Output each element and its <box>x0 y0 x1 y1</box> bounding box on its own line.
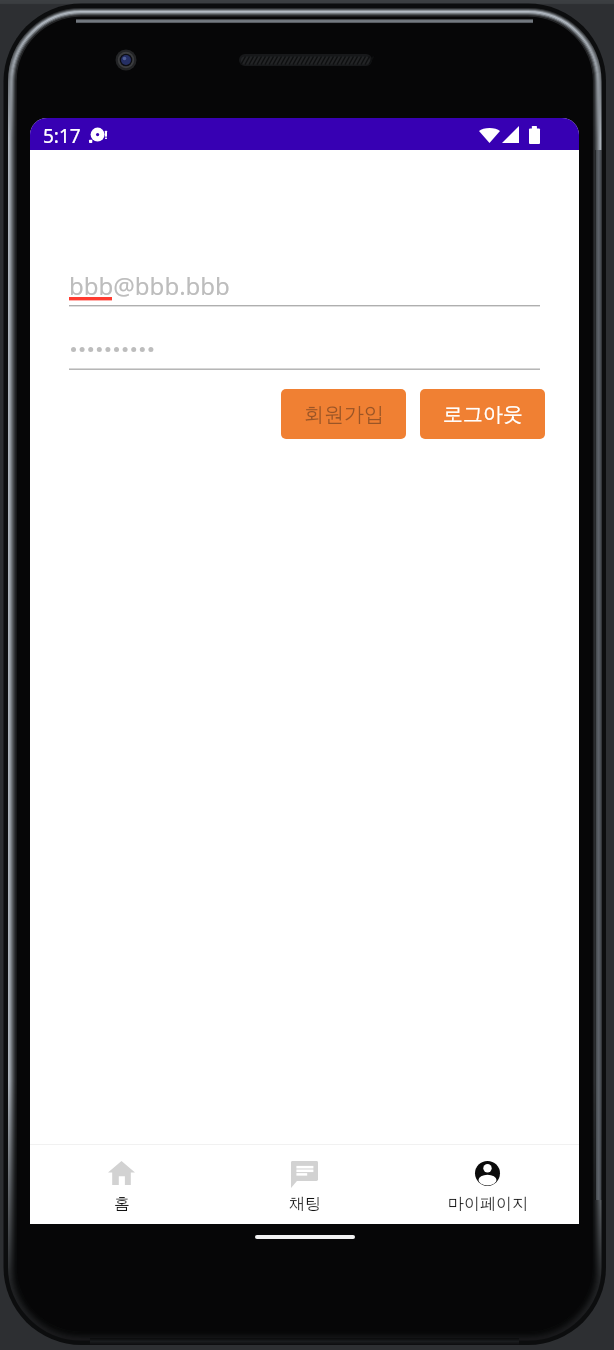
staticText: 5:17 <box>43 123 81 149</box>
staticText: 채팅 <box>289 1194 321 1214</box>
staticText: 홈 <box>114 1194 130 1214</box>
button[interactable]: 홈 <box>30 1145 213 1214</box>
staticText: 로그아웃 <box>443 402 523 427</box>
button[interactable]: 채팅 <box>213 1145 396 1214</box>
staticText: 회원가입 <box>304 402 384 427</box>
staticText: bbb@bbb.bbb <box>69 269 230 302</box>
staticText: 마이페이지 <box>448 1194 528 1214</box>
button[interactable]: 마이페이지 <box>396 1145 579 1214</box>
button[interactable]: 회원가입 <box>281 389 406 439</box>
button[interactable]: 로그아웃 <box>420 389 545 439</box>
